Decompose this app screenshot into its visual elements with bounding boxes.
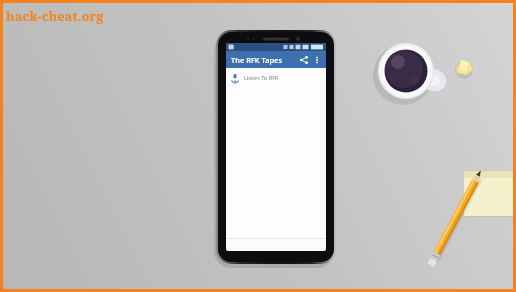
button[interactable]: More options <box>311 54 323 66</box>
button[interactable]: Listen To RFK <box>226 68 326 87</box>
staticText: The RFK Tapes <box>231 55 283 65</box>
button[interactable]: Share <box>297 53 311 67</box>
staticText: hack-cheat.org <box>6 7 104 25</box>
staticText: Listen To RFK <box>244 74 279 82</box>
